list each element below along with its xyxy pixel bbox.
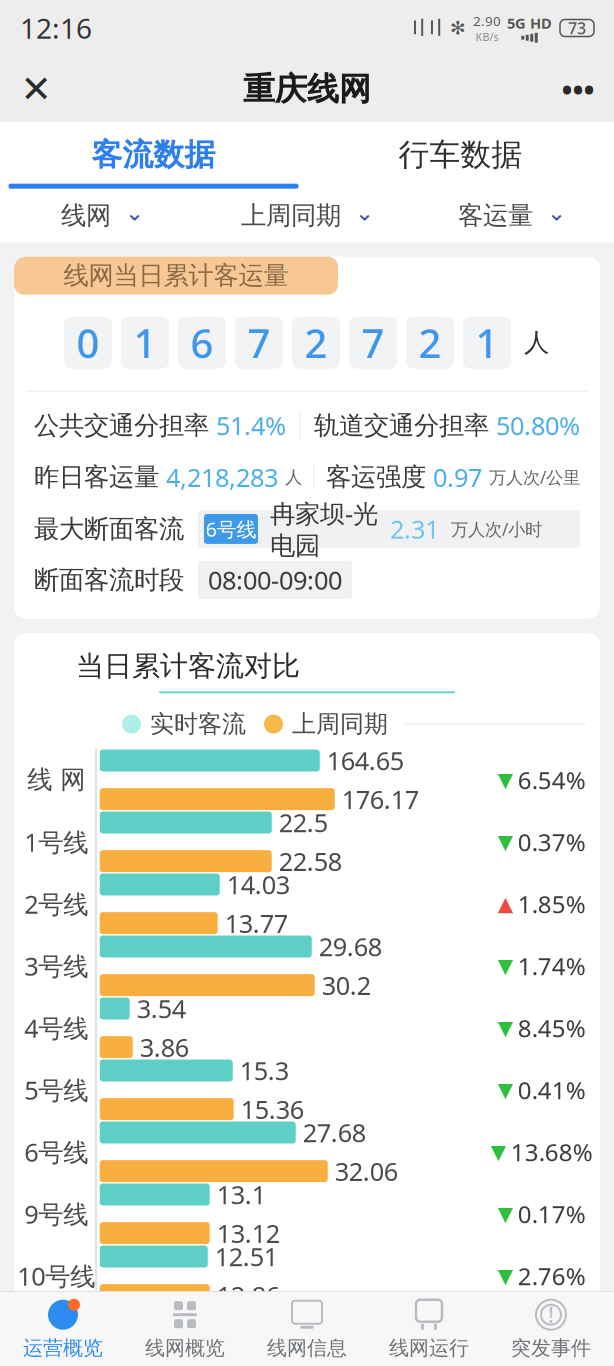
staticText: 0.97	[433, 460, 482, 494]
staticText: 实时客流	[150, 709, 246, 739]
button[interactable]: 运营概览	[2, 1293, 124, 1365]
staticText: 15.36	[241, 1092, 304, 1126]
button[interactable]: 线网运行	[368, 1293, 490, 1365]
staticText: 9号线	[24, 1197, 88, 1231]
staticText: KB/s	[475, 30, 498, 44]
staticText: ▼	[498, 1202, 513, 1225]
staticText: ▼	[498, 1016, 513, 1039]
staticText: 公共交通分担率	[34, 410, 209, 441]
staticText: 2号线	[24, 887, 88, 921]
staticText: 13.68%	[511, 1136, 593, 1168]
staticText: 0.37%	[518, 826, 586, 858]
staticText: 12.86	[217, 1278, 280, 1312]
staticText: 3.54	[137, 992, 186, 1025]
staticText: 164.65	[327, 744, 404, 777]
staticText: 5G HD	[507, 13, 552, 33]
staticText: 14.03	[227, 868, 290, 901]
staticText: 客运量	[458, 200, 533, 231]
staticText: 重庆线网	[243, 69, 371, 109]
button[interactable]: 线网信息	[246, 1293, 368, 1365]
staticText: ▼	[498, 830, 513, 853]
staticText: 32.06	[335, 1154, 398, 1188]
staticText: •••	[561, 69, 594, 108]
staticText: 1	[133, 316, 156, 369]
staticText: 51.4%	[216, 409, 286, 442]
staticText: 22.58	[279, 844, 342, 878]
staticText: 6号线	[205, 516, 256, 542]
staticText: 线网运行	[389, 1336, 469, 1360]
staticText: 2	[304, 316, 327, 369]
staticText: 5号线	[24, 1073, 88, 1107]
staticText: 3.86	[140, 1030, 189, 1064]
staticText: 6.54%	[518, 764, 586, 796]
staticText: 线网信息	[267, 1336, 347, 1360]
staticText: 13.77	[225, 906, 288, 940]
staticText: 万人次/小时	[451, 517, 542, 540]
button[interactable]: !	[490, 1293, 612, 1365]
button[interactable]: 线网概览	[124, 1293, 246, 1365]
staticText: 1.85%	[518, 888, 586, 920]
staticText: 突发事件	[511, 1336, 591, 1360]
staticText: ⌄	[355, 200, 374, 225]
staticText: 10号线	[17, 1259, 95, 1293]
staticText: 人	[285, 466, 302, 488]
staticText: ▼	[498, 954, 513, 977]
staticText: 6	[190, 316, 213, 369]
staticText: 1.74%	[518, 950, 586, 982]
staticText: 27.68	[303, 1116, 366, 1149]
staticText: ▼	[498, 1264, 513, 1287]
staticText: 当日累计客流对比	[76, 649, 300, 683]
staticText: 15.3	[240, 1054, 289, 1087]
staticText: !	[548, 1301, 554, 1329]
staticText: 人	[524, 327, 549, 358]
staticText: 4号线	[24, 1011, 88, 1045]
staticText: 客运强度	[326, 462, 426, 493]
staticText: 上周同期	[241, 200, 341, 231]
staticText: 0.41%	[518, 1074, 586, 1106]
staticText: ⌄	[125, 200, 144, 225]
staticText: 7	[247, 316, 270, 369]
staticText: 线网概览	[145, 1336, 225, 1360]
button[interactable]: 线网	[61, 194, 144, 238]
staticText: 176.17	[342, 782, 419, 816]
staticText: 29.68	[319, 930, 382, 963]
staticText: 7	[361, 316, 384, 369]
button[interactable]: 上周同期	[241, 194, 374, 238]
staticText: 冉家坝-光电园	[270, 497, 378, 561]
staticText: 2	[418, 316, 441, 369]
staticText: ⌄	[547, 200, 566, 225]
staticText: 08:00-09:00	[208, 563, 342, 597]
staticText: 轨道交通分担率	[314, 410, 489, 441]
staticText: 线网当日累计客运量	[63, 260, 288, 291]
staticText: 12.51	[215, 1240, 278, 1273]
staticText: ▼	[498, 1078, 513, 1101]
button[interactable]: 关闭	[8, 61, 64, 117]
staticText: 运营概览	[23, 1336, 103, 1360]
button[interactable]: 客运量	[458, 194, 566, 238]
staticText: 73	[568, 17, 586, 39]
staticText: 〢〢	[410, 17, 444, 39]
staticText: 30.2	[322, 968, 371, 1002]
button[interactable]: 客流数据	[0, 136, 307, 189]
staticText: 最大断面客流	[34, 513, 184, 544]
button[interactable]: 更多	[550, 61, 606, 117]
staticText: ✕	[20, 68, 51, 110]
staticText: 13.1	[217, 1178, 266, 1211]
staticText: 2.31	[390, 512, 439, 546]
staticText: 6号线	[24, 1135, 88, 1169]
staticText: 50.80%	[496, 409, 580, 442]
staticText: 2.90	[473, 12, 501, 30]
staticText: 上周同期	[292, 709, 388, 739]
staticText: ✻	[450, 17, 466, 39]
staticText: 8.45%	[518, 1012, 586, 1044]
button[interactable]: 行车数据	[307, 136, 614, 189]
staticText: 线网	[61, 200, 111, 231]
staticText: 4,218,283	[166, 460, 278, 494]
staticText: 万人次/公里	[489, 466, 580, 489]
staticText: 13.12	[217, 1216, 280, 1250]
staticText: 0.17%	[518, 1198, 586, 1230]
staticText: 0	[76, 316, 99, 369]
staticText: 断面客流时段	[34, 564, 184, 595]
staticText: 客流数据	[91, 136, 215, 174]
staticText: ▲	[498, 892, 513, 915]
